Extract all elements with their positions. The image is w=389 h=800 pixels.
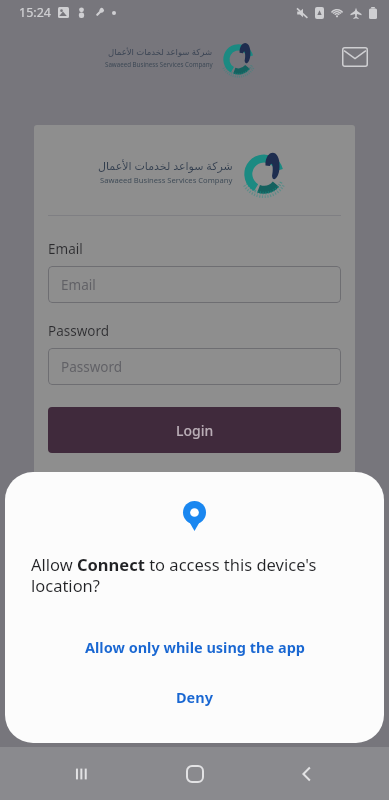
staticText: Password — [61, 358, 123, 376]
button[interactable]: Back — [277, 747, 337, 800]
button[interactable]: Deny — [5, 675, 384, 719]
button[interactable]: Email — [48, 266, 341, 303]
button[interactable]: Password — [48, 348, 341, 385]
button[interactable]: Messages — [333, 35, 377, 79]
staticText: Allow Connect to access this device's lo… — [31, 553, 358, 597]
staticText: Password — [48, 322, 110, 340]
staticText: Allow only while using the app — [85, 637, 305, 657]
button[interactable]: Login — [48, 407, 341, 453]
button[interactable]: Allow only while using the app — [5, 625, 384, 669]
staticText: Sawaeed Business Services Company — [100, 175, 233, 185]
button[interactable]: Home — [165, 747, 225, 800]
staticText: Email — [48, 240, 83, 258]
button[interactable]: Recent apps — [52, 747, 112, 800]
staticText: Sawaeed Business Services Company — [105, 60, 213, 68]
staticText: 15:24 — [19, 4, 51, 21]
staticText: شركة سواعد لخدمات الأعمال — [98, 158, 233, 173]
staticText: Email — [61, 276, 96, 294]
staticText: Deny — [176, 687, 213, 707]
staticText: Login — [176, 421, 214, 440]
staticText: شركة سواعد لخدمات الأعمال — [108, 46, 213, 58]
